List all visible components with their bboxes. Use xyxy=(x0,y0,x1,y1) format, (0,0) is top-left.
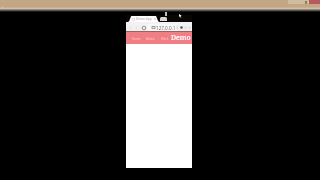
staticText: About xyxy=(146,37,155,41)
button[interactable]: Forward xyxy=(134,25,139,30)
button[interactable]: Back xyxy=(128,25,133,30)
staticText: :8000/i… xyxy=(176,24,178,31)
staticText: Demo xyxy=(171,33,191,43)
staticText: Demo App xyxy=(136,17,152,21)
button[interactable]: New tab xyxy=(160,17,167,21)
button[interactable]: Demo App tab xyxy=(128,15,160,22)
button[interactable]: Bookmark xyxy=(179,25,183,29)
button[interactable]: About xyxy=(146,37,155,41)
button[interactable]: Address bar xyxy=(147,24,178,31)
staticText: Home xyxy=(132,37,141,41)
button[interactable]: Reload xyxy=(141,25,146,30)
staticText: Work xyxy=(161,37,169,41)
button[interactable]: Home xyxy=(132,37,141,41)
staticText: 127.0.0.1 xyxy=(156,25,176,31)
button[interactable]: Work xyxy=(161,37,169,41)
